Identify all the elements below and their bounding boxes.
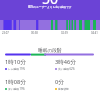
staticText: 覚醒状態: [58, 87, 69, 90]
button[interactable]: 3時46分: [50, 58, 100, 71]
button[interactable]: 1時10分: [0, 58, 50, 71]
staticText: 02:39: [61, 31, 68, 35]
staticText: 1時10分: [5, 58, 26, 66]
staticText: レム睡眠 19%: [8, 67, 25, 71]
staticText: 浅い睡眠 62%: [58, 67, 75, 71]
button[interactable]: 0分: [50, 78, 100, 90]
staticText: 0分: [55, 78, 64, 86]
staticText: 00:38: [31, 31, 38, 35]
staticText: 3時46分: [55, 58, 76, 66]
staticText: 80%のユーザーよりも高い睡眠です: [28, 5, 72, 9]
staticText: 睡眠の段階: [38, 47, 62, 53]
button[interactable]: 1時08分: [0, 78, 50, 91]
staticText: 04:41: [91, 31, 98, 35]
staticText: 23:07: [2, 31, 9, 35]
staticText: 50: [42, 0, 59, 8]
staticText: 深い睡眠 19%: [8, 87, 25, 91]
staticText: 1時08分: [5, 78, 26, 86]
